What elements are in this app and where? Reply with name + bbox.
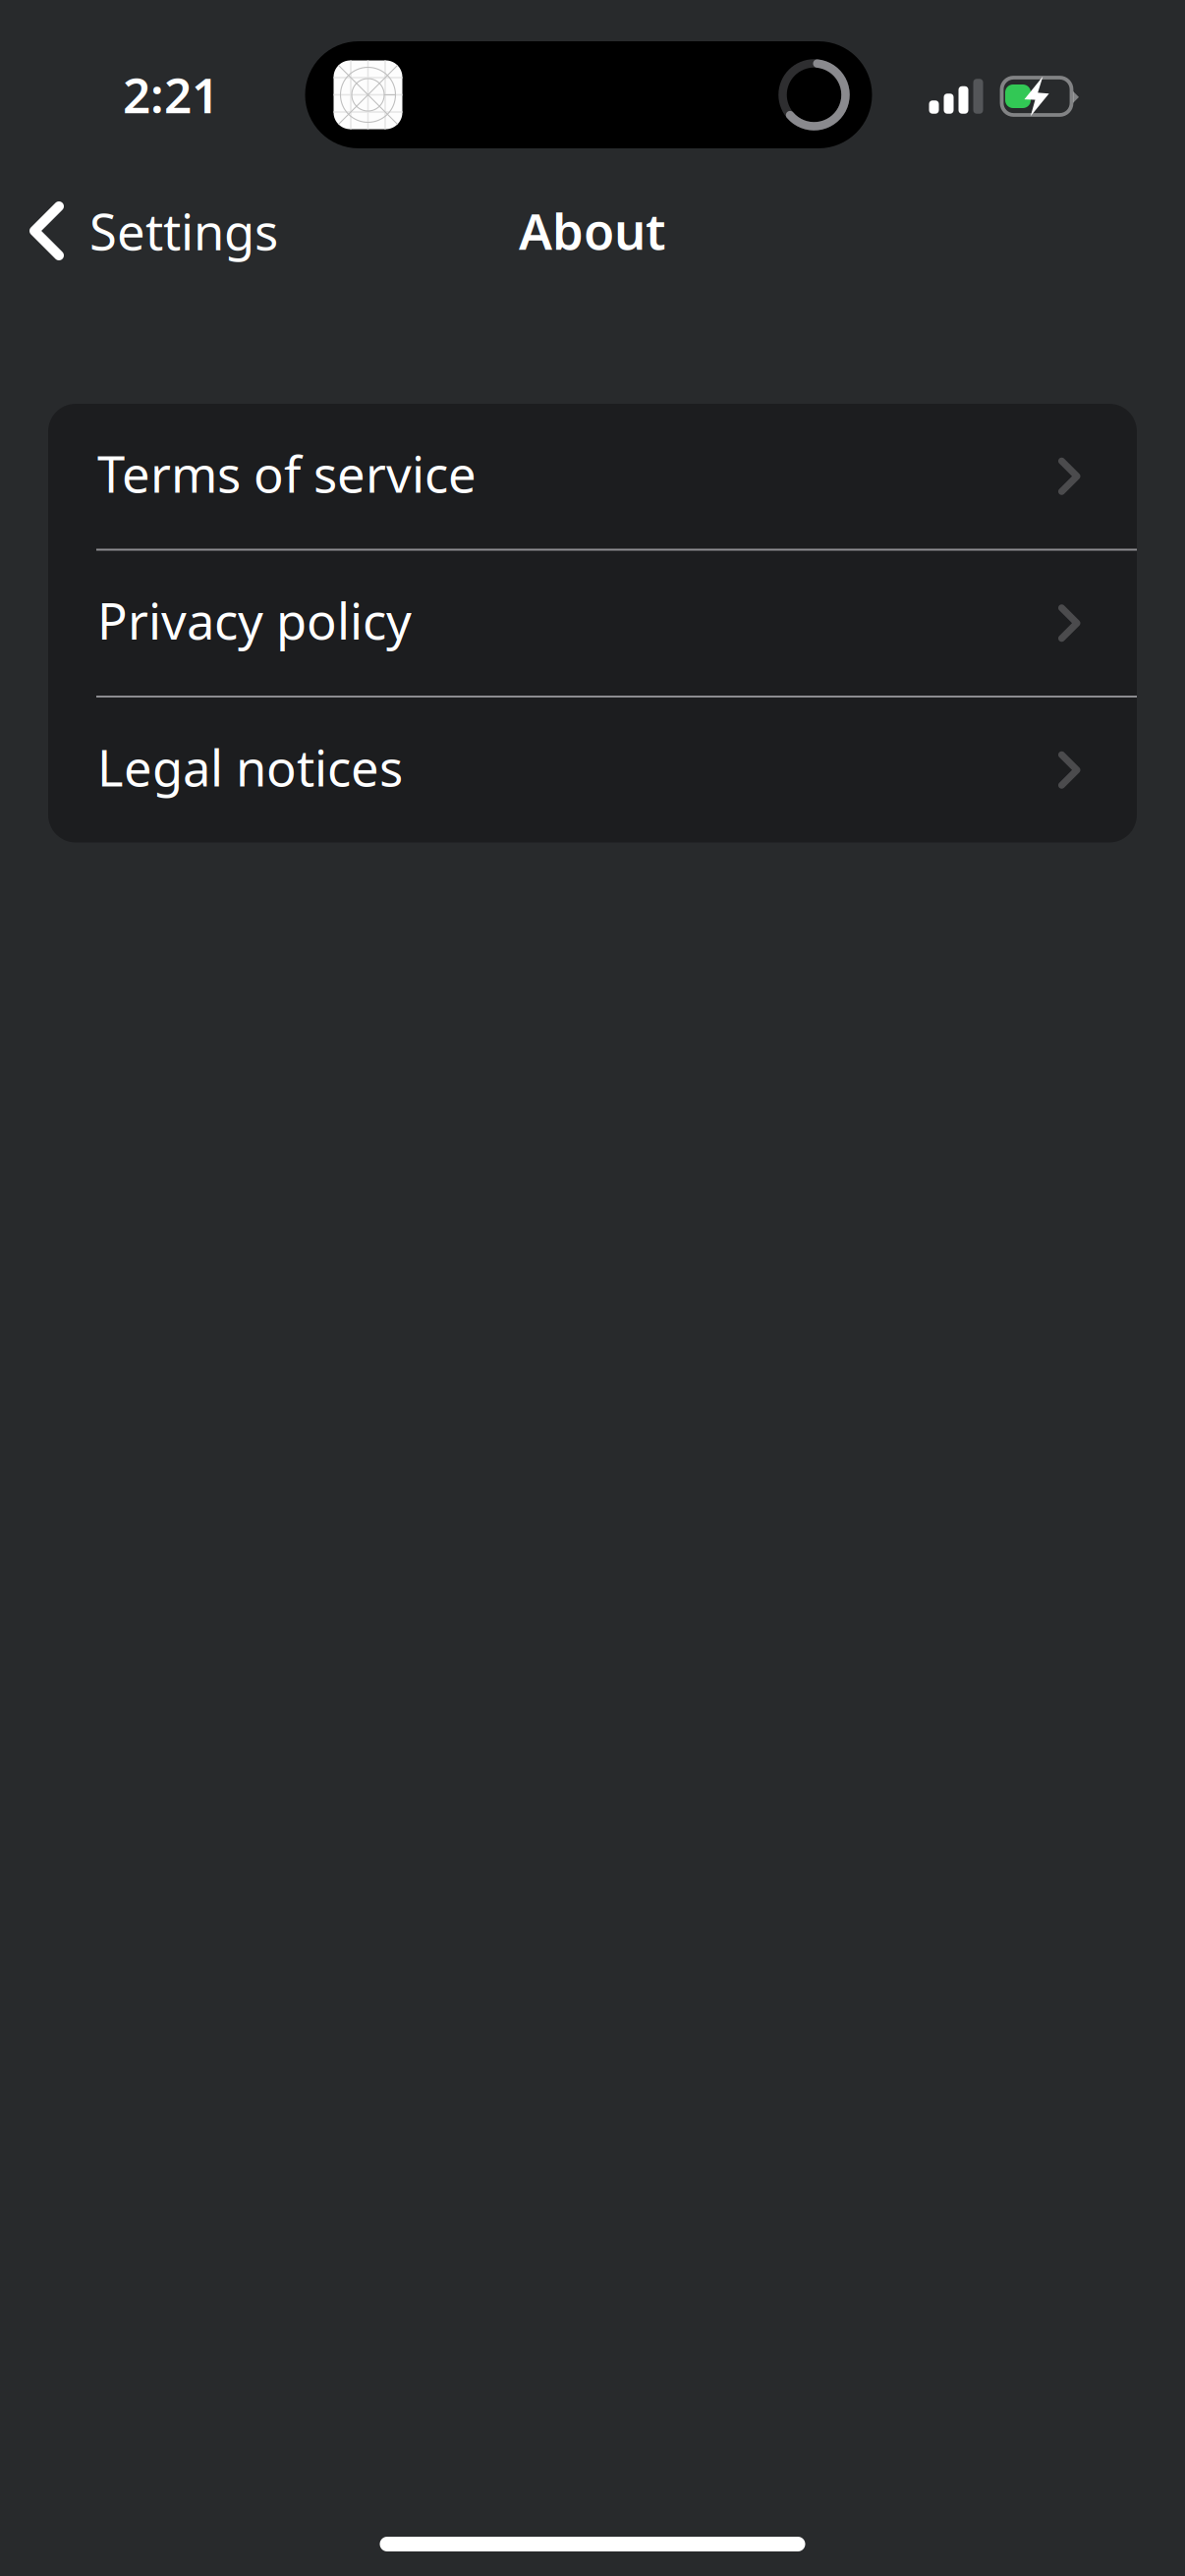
- button[interactable]: Legal notices: [48, 698, 1137, 842]
- staticText: About: [519, 197, 666, 263]
- button[interactable]: Privacy policy: [48, 551, 1137, 696]
- staticText: Settings: [89, 198, 278, 264]
- staticText: 2:21: [123, 62, 219, 126]
- staticText: Privacy policy: [97, 587, 412, 653]
- button[interactable]: Terms of service: [48, 404, 1137, 549]
- button[interactable]: Settings: [0, 179, 304, 275]
- staticText: Terms of service: [97, 440, 477, 506]
- staticText: Legal notices: [97, 734, 403, 800]
